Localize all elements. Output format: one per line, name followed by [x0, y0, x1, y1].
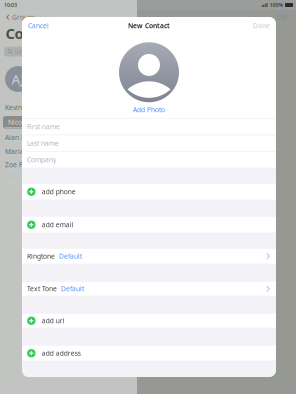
- staticText: Text Tone: [27, 284, 57, 293]
- staticText: New Contact: [128, 21, 170, 30]
- button[interactable]: Cancel: [22, 17, 57, 34]
- staticText: Company: [27, 155, 56, 164]
- staticText: Default: [59, 252, 82, 261]
- button[interactable]: Alan Reed: [3, 131, 39, 144]
- staticText: Edit: [277, 13, 289, 21]
- button[interactable]: Nicole Hart: [3, 116, 133, 128]
- staticText: add url: [42, 316, 65, 325]
- staticText: Kevin Lee: [5, 103, 35, 112]
- button[interactable]: add phone: [22, 184, 276, 200]
- staticText: Last name: [27, 139, 59, 148]
- button[interactable]: Groups: [3, 11, 38, 24]
- staticText: Cancel: [28, 21, 49, 30]
- staticText: Add Photo: [133, 105, 165, 114]
- button[interactable]: Zoe Park: [3, 158, 36, 171]
- button[interactable]: add address: [22, 346, 276, 361]
- staticText: Search: [14, 47, 36, 56]
- staticText: AJ: [11, 70, 24, 88]
- button[interactable]: Add Photo: [127, 102, 171, 117]
- staticText: 100%: [269, 1, 283, 9]
- button[interactable]: Search: [4, 47, 131, 57]
- staticText: add email: [42, 220, 74, 229]
- staticText: Alan Reed: [5, 133, 37, 142]
- staticText: add address: [42, 349, 81, 358]
- staticText: Maria Cruz: [5, 147, 40, 156]
- button[interactable]: add email: [22, 217, 276, 233]
- button[interactable]: Kevin Lee: [3, 101, 37, 114]
- button[interactable]: Maria Cruz: [3, 145, 42, 158]
- staticText: Done: [253, 21, 270, 30]
- staticText: Zoe Park: [5, 160, 34, 169]
- staticText: add phone: [42, 187, 76, 196]
- staticText: Ringtone: [27, 252, 55, 261]
- staticText: 10:03: [4, 1, 17, 9]
- button[interactable]: Done: [245, 17, 276, 34]
- button[interactable]: My Card: [5, 66, 31, 92]
- button[interactable]: Ringtone: [22, 249, 276, 264]
- staticText: Nicole Hart: [8, 118, 44, 127]
- button[interactable]: Text Tone: [22, 282, 276, 296]
- staticText: Groups: [12, 13, 35, 22]
- button[interactable]: add url: [22, 314, 276, 328]
- staticText: First name: [27, 122, 60, 131]
- staticText: Contacts: [5, 23, 69, 43]
- staticText: Default: [61, 284, 84, 293]
